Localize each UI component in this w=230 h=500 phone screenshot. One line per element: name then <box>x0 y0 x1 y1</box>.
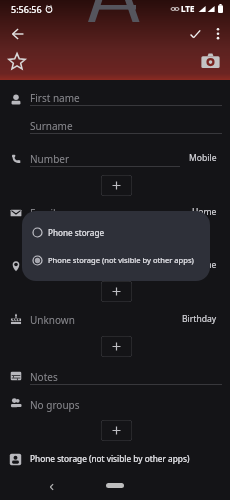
staticText: LTE <box>181 3 195 14</box>
button[interactable]: Phone storage <box>22 219 210 245</box>
button[interactable]: Home <box>106 483 124 488</box>
button[interactable]: Add <box>101 175 132 196</box>
staticText: Email <box>30 206 56 220</box>
staticText: Phone storage (not visible by other apps… <box>48 255 194 265</box>
button[interactable]: More options <box>205 21 230 47</box>
button[interactable]: Add to favourites <box>4 49 30 75</box>
button[interactable]: Change photo <box>201 52 220 71</box>
button[interactable]: Add <box>101 229 132 250</box>
button[interactable]: Save <box>182 21 208 47</box>
staticText: Number <box>30 152 70 166</box>
button[interactable]: Add <box>101 281 132 302</box>
button[interactable]: Home <box>192 259 217 271</box>
staticText: Phone storage <box>48 227 105 238</box>
staticText: 5:56:56 <box>11 3 42 15</box>
staticText: First name <box>30 91 80 105</box>
button[interactable]: Add <box>101 336 132 357</box>
staticText: No groups <box>30 398 80 412</box>
staticText: Surname <box>30 119 73 133</box>
button[interactable]: Back <box>45 480 59 494</box>
button[interactable]: Mobile <box>189 152 217 164</box>
button[interactable]: Navigate up <box>5 21 31 47</box>
button[interactable]: Add <box>101 420 132 441</box>
staticText: Unknown <box>30 313 75 327</box>
button[interactable]: Phone storage (not visible by other apps… <box>30 453 190 464</box>
button[interactable]: Home <box>192 206 217 218</box>
staticText: Address <box>30 259 68 273</box>
button[interactable]: Birthday <box>182 313 217 325</box>
staticText: Notes <box>30 370 58 384</box>
button[interactable]: Phone storage (not visible by other apps… <box>22 247 210 273</box>
